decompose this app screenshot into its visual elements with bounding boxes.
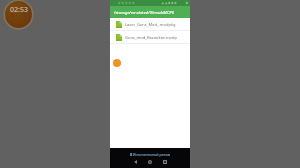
button[interactable]: Play 02:53 <box>3 0 34 30</box>
staticText: Laser_Guns_Mod_.modpkg <box>125 22 176 27</box>
staticText: Испытательный режим <box>133 152 171 156</box>
button[interactable]: Back <box>130 157 140 167</box>
button[interactable]: Add mod <box>113 59 121 67</box>
button[interactable]: Home <box>145 157 155 167</box>
staticText: /storage/emulated/0/modsMCPE <box>114 10 175 15</box>
staticText: 02:53 <box>10 5 28 15</box>
button[interactable]: Guns_mod_Bazookas.modp <box>110 31 190 43</box>
button[interactable]: Laser_Guns_Mod_.modpkg <box>110 18 190 30</box>
staticText: Guns_mod_Bazookas.modp <box>125 35 177 40</box>
button[interactable]: Recent apps <box>160 157 170 167</box>
staticText: MCPE <box>10 11 27 19</box>
button[interactable]: /storage/emulated/0/modsMCPE <box>110 6 190 18</box>
